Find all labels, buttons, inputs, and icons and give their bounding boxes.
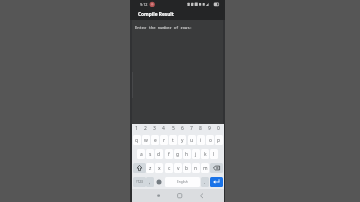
- staticText: h: [185, 151, 189, 158]
- staticText: ?123: [136, 180, 143, 184]
- button[interactable]: m: [201, 163, 209, 173]
- button[interactable]: 8: [196, 125, 205, 132]
- button[interactable]: [193, 189, 224, 202]
- button[interactable]: [210, 163, 223, 173]
- staticText: f: [168, 151, 170, 158]
- button[interactable]: y: [178, 135, 186, 145]
- button[interactable]: x: [155, 163, 163, 173]
- staticText: 6: [181, 125, 184, 132]
- staticText: b: [185, 165, 189, 172]
- button[interactable]: v: [174, 163, 182, 173]
- staticText: 7: [190, 125, 193, 132]
- staticText: n: [194, 165, 198, 172]
- staticText: 8: [199, 125, 202, 132]
- staticText: m: [203, 165, 208, 172]
- staticText: 5: [172, 125, 175, 132]
- staticText: 9:12: [140, 2, 148, 7]
- staticText: a: [140, 151, 143, 158]
- button[interactable]: ?123: [133, 177, 146, 187]
- staticText: d: [157, 151, 161, 158]
- button[interactable]: h: [183, 149, 191, 159]
- staticText: 9: [208, 125, 211, 132]
- staticText: v: [177, 165, 180, 172]
- button[interactable]: d: [155, 149, 163, 159]
- staticText: c: [168, 165, 171, 172]
- staticText: e: [154, 137, 157, 144]
- button[interactable]: b: [183, 163, 191, 173]
- button[interactable]: k: [201, 149, 209, 159]
- button[interactable]: i: [197, 135, 205, 145]
- button[interactable]: ,: [146, 177, 154, 187]
- staticText: t: [172, 137, 174, 144]
- button[interactable]: n: [192, 163, 200, 173]
- staticText: .: [204, 179, 206, 185]
- staticText: 3: [153, 125, 156, 132]
- button[interactable]: [133, 163, 146, 173]
- button[interactable]: Compile Result: [138, 11, 174, 18]
- staticText: 0: [217, 125, 220, 132]
- button[interactable]: w: [142, 135, 150, 145]
- button[interactable]: [162, 189, 193, 202]
- button[interactable]: 1: [132, 125, 141, 132]
- button[interactable]: f: [165, 149, 173, 159]
- button[interactable]: g: [174, 149, 182, 159]
- button[interactable]: [155, 177, 163, 187]
- staticText: l: [213, 151, 215, 158]
- button[interactable]: t: [169, 135, 177, 145]
- staticText: u: [190, 137, 194, 144]
- button[interactable]: q: [133, 135, 141, 145]
- staticText: Enter the number of rows:: [135, 25, 192, 30]
- button[interactable]: u: [188, 135, 196, 145]
- staticText: g: [176, 151, 180, 158]
- staticText: p: [217, 137, 221, 144]
- button[interactable]: o: [206, 135, 214, 145]
- button[interactable]: e: [151, 135, 159, 145]
- button[interactable]: 5: [169, 125, 178, 132]
- button[interactable]: 7: [187, 125, 196, 132]
- button[interactable]: r: [160, 135, 168, 145]
- button[interactable]: 3: [150, 125, 159, 132]
- button[interactable]: [210, 177, 223, 187]
- button[interactable]: p: [215, 135, 223, 145]
- staticText: i: [200, 137, 202, 144]
- staticText: r: [163, 137, 166, 144]
- staticText: s: [149, 151, 152, 158]
- staticText: k: [204, 151, 207, 158]
- button[interactable]: c: [165, 163, 173, 173]
- button[interactable]: l: [210, 149, 218, 159]
- button[interactable]: s: [146, 149, 154, 159]
- staticText: z: [149, 165, 152, 172]
- button[interactable]: [132, 189, 162, 202]
- staticText: o: [209, 137, 212, 144]
- button[interactable]: j: [192, 149, 200, 159]
- staticText: English: [177, 180, 188, 184]
- staticText: Compile Result: [138, 11, 174, 18]
- button[interactable]: z: [146, 163, 154, 173]
- button[interactable]: a: [137, 149, 145, 159]
- button[interactable]: 4: [159, 125, 168, 132]
- button[interactable]: 0: [214, 125, 223, 132]
- staticText: 2: [144, 125, 147, 132]
- button[interactable]: 6: [178, 125, 187, 132]
- button[interactable]: .: [201, 177, 209, 187]
- button[interactable]: English: [165, 177, 200, 187]
- staticText: q: [135, 137, 139, 144]
- staticText: ,: [149, 179, 151, 185]
- staticText: x: [158, 165, 161, 172]
- button[interactable]: 2: [141, 125, 150, 132]
- staticText: 1: [135, 125, 138, 132]
- staticText: w: [144, 137, 148, 144]
- staticText: j: [195, 151, 197, 158]
- staticText: y: [181, 137, 184, 144]
- staticText: 4: [162, 125, 165, 132]
- button[interactable]: 9: [205, 125, 214, 132]
